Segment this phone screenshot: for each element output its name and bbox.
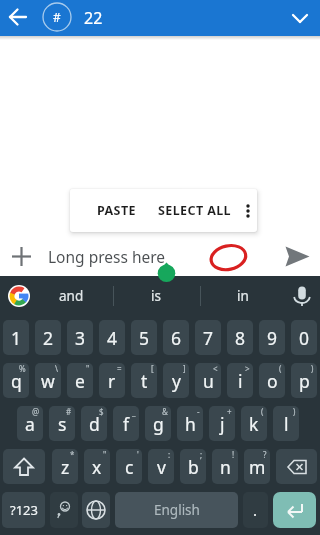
button[interactable] <box>82 492 110 528</box>
button[interactable]: o <box>259 363 285 398</box>
button[interactable]: . <box>243 492 268 528</box>
staticText: l <box>284 412 289 436</box>
staticText: " <box>86 363 90 374</box>
button[interactable]: # <box>43 3 71 31</box>
button[interactable]: d <box>81 406 107 441</box>
button[interactable]: x <box>84 449 110 484</box>
button[interactable] <box>284 246 311 267</box>
staticText: 2 <box>43 326 54 350</box>
staticText: * <box>70 449 75 460</box>
button[interactable]: n <box>212 449 238 484</box>
staticText: . <box>253 500 258 520</box>
button[interactable] <box>273 492 316 528</box>
button[interactable] <box>10 245 33 268</box>
staticText: u <box>203 369 214 393</box>
button[interactable] <box>6 5 30 29</box>
button[interactable]: SELECT ALL <box>146 189 239 232</box>
button[interactable] <box>239 189 257 232</box>
staticText: m <box>249 455 266 479</box>
button[interactable]: g <box>145 406 171 441</box>
staticText: > <box>245 363 250 374</box>
staticText: q <box>11 369 22 393</box>
staticText: & <box>162 406 168 417</box>
button[interactable]: 7 <box>195 320 221 355</box>
button[interactable] <box>3 449 45 484</box>
staticText: r <box>108 369 116 393</box>
button[interactable] <box>291 285 313 307</box>
button[interactable]: q <box>3 363 29 398</box>
button[interactable]: b <box>180 449 206 484</box>
staticText: y <box>172 369 181 393</box>
button[interactable]: p <box>291 363 317 398</box>
staticText: [ <box>151 363 154 374</box>
staticText: e <box>75 369 85 393</box>
button[interactable]: 9 <box>259 320 285 355</box>
button[interactable]: f <box>113 406 139 441</box>
staticText: _ <box>132 406 136 417</box>
button[interactable]: e <box>67 363 93 398</box>
button[interactable]: English <box>115 492 238 528</box>
staticText: ( <box>279 363 282 374</box>
staticText: SELECT ALL <box>158 202 231 219</box>
button[interactable]: h <box>177 406 203 441</box>
button[interactable] <box>50 492 78 528</box>
button[interactable] <box>291 9 309 27</box>
button[interactable]: j <box>209 406 235 441</box>
button[interactable]: Long press here <box>48 246 166 267</box>
button[interactable] <box>8 285 30 307</box>
button[interactable]: 1 <box>3 320 29 355</box>
staticText: ! <box>232 449 235 460</box>
staticText: n <box>220 455 231 479</box>
button[interactable]: PASTE <box>70 189 146 232</box>
button[interactable]: 3 <box>67 320 93 355</box>
button[interactable]: u <box>195 363 221 398</box>
button[interactable]: k <box>241 406 267 441</box>
button[interactable]: 5 <box>131 320 157 355</box>
staticText: h <box>185 412 196 436</box>
button[interactable]: y <box>163 363 189 398</box>
staticText: 5 <box>139 326 150 350</box>
button[interactable]: 2 <box>35 320 61 355</box>
button[interactable]: c <box>116 449 142 484</box>
button[interactable]: t <box>131 363 157 398</box>
button[interactable]: w <box>35 363 61 398</box>
staticText: b <box>188 455 199 479</box>
staticText: : <box>168 449 171 460</box>
button[interactable]: m <box>244 449 270 484</box>
button[interactable]: 6 <box>163 320 189 355</box>
button[interactable]: v <box>148 449 174 484</box>
staticText: ] <box>183 363 186 374</box>
button[interactable]: ?123 <box>2 492 45 528</box>
staticText: j <box>220 412 225 436</box>
staticText: a <box>25 412 35 436</box>
staticText: # <box>53 9 61 25</box>
button[interactable]: in <box>212 276 274 316</box>
button[interactable]: and <box>40 276 102 316</box>
staticText: < <box>213 363 218 374</box>
button[interactable]: r <box>99 363 125 398</box>
staticText: PASTE <box>97 202 136 219</box>
button[interactable]: i <box>227 363 253 398</box>
staticText: ( <box>261 406 264 417</box>
button[interactable]: 4 <box>99 320 125 355</box>
button[interactable]: is <box>125 276 187 316</box>
staticText: 1 <box>11 326 22 350</box>
button[interactable]: z <box>52 449 78 484</box>
staticText: 4 <box>107 326 118 350</box>
staticText: i <box>238 369 243 393</box>
button[interactable]: l <box>273 406 299 441</box>
button[interactable]: 8 <box>227 320 253 355</box>
staticText: # <box>66 406 72 417</box>
staticText: $ <box>99 406 104 417</box>
button[interactable]: 0 <box>291 320 317 355</box>
staticText: and <box>59 287 84 305</box>
staticText: ) <box>311 363 314 374</box>
button[interactable]: a <box>17 406 43 441</box>
staticText: ?123 <box>10 501 38 519</box>
staticText: c <box>125 455 134 479</box>
button[interactable] <box>276 449 317 484</box>
staticText: x <box>92 455 102 479</box>
staticText: z <box>61 455 70 479</box>
button[interactable]: s <box>49 406 75 441</box>
staticText: 7 <box>203 326 214 350</box>
